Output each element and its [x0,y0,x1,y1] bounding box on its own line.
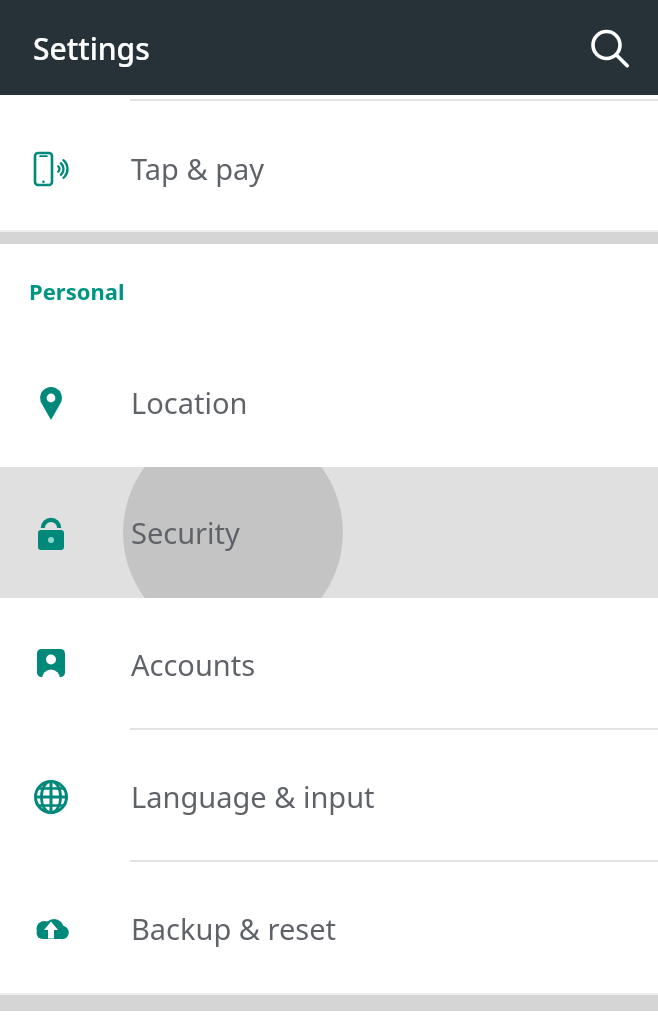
staticText: Location [131,383,248,422]
button[interactable]: Tap & pay [0,103,658,234]
button[interactable]: Backup & reset [0,863,658,994]
staticText: Backup & reset [131,909,337,948]
button[interactable]: Search [573,12,645,84]
staticText: Language & input [131,777,375,816]
button[interactable]: Location [0,337,658,468]
staticText: Accounts [131,645,256,684]
staticText: Settings [33,28,150,69]
button[interactable]: Security [0,467,658,598]
button[interactable]: Accounts [0,599,658,730]
staticText: Tap & pay [131,149,265,188]
button[interactable]: Language & input [0,731,658,862]
staticText: Security [131,513,240,552]
staticText: Personal [29,276,125,306]
